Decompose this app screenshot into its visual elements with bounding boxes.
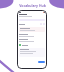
staticText: Vocabulary Hub (19, 3, 46, 8)
button[interactable] (19, 48, 45, 57)
button[interactable] (19, 27, 45, 32)
button[interactable]: Continue (38, 61, 45, 63)
